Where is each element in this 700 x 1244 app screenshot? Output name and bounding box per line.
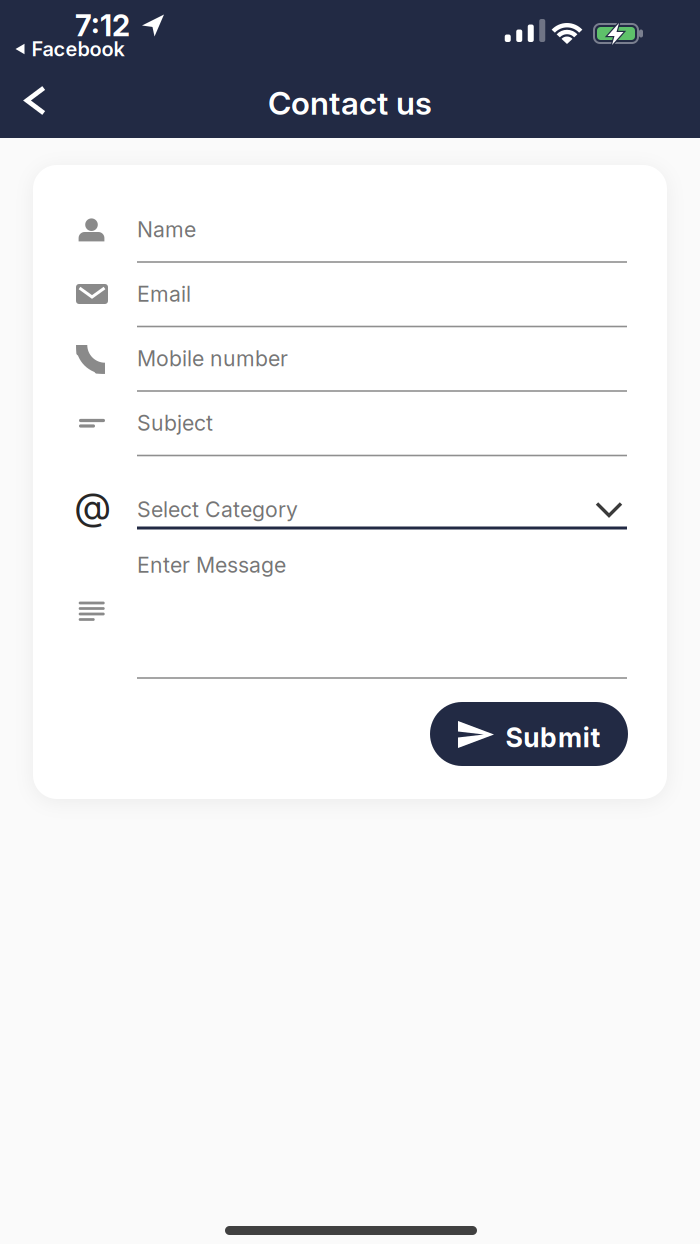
staticText: Facebook	[31, 37, 124, 61]
staticText: Email	[137, 281, 191, 307]
staticText: Subject	[137, 410, 213, 436]
staticText: Mobile number	[137, 346, 288, 371]
staticText: t	[590, 722, 600, 753]
staticText: m	[558, 722, 582, 753]
staticText: Name	[137, 217, 196, 242]
staticText: S	[505, 722, 522, 753]
staticText: 7:12	[75, 8, 130, 43]
button[interactable]: S	[430, 702, 628, 766]
button[interactable]: Subject	[70, 391, 630, 461]
staticText: Contact us	[268, 84, 432, 122]
button[interactable]: Email	[70, 262, 630, 332]
button[interactable]: Mobile number	[70, 326, 630, 396]
staticText: i	[583, 722, 590, 753]
button[interactable]: @	[70, 479, 630, 539]
staticText: @	[74, 483, 110, 529]
button[interactable]: Back	[15, 81, 59, 125]
staticText: u	[523, 722, 539, 753]
staticText: Select Category	[137, 497, 298, 522]
button[interactable]: Enter Message	[70, 545, 630, 690]
staticText: b	[540, 722, 557, 753]
button[interactable]: Name	[70, 197, 630, 267]
staticText: Enter Message	[137, 552, 286, 578]
